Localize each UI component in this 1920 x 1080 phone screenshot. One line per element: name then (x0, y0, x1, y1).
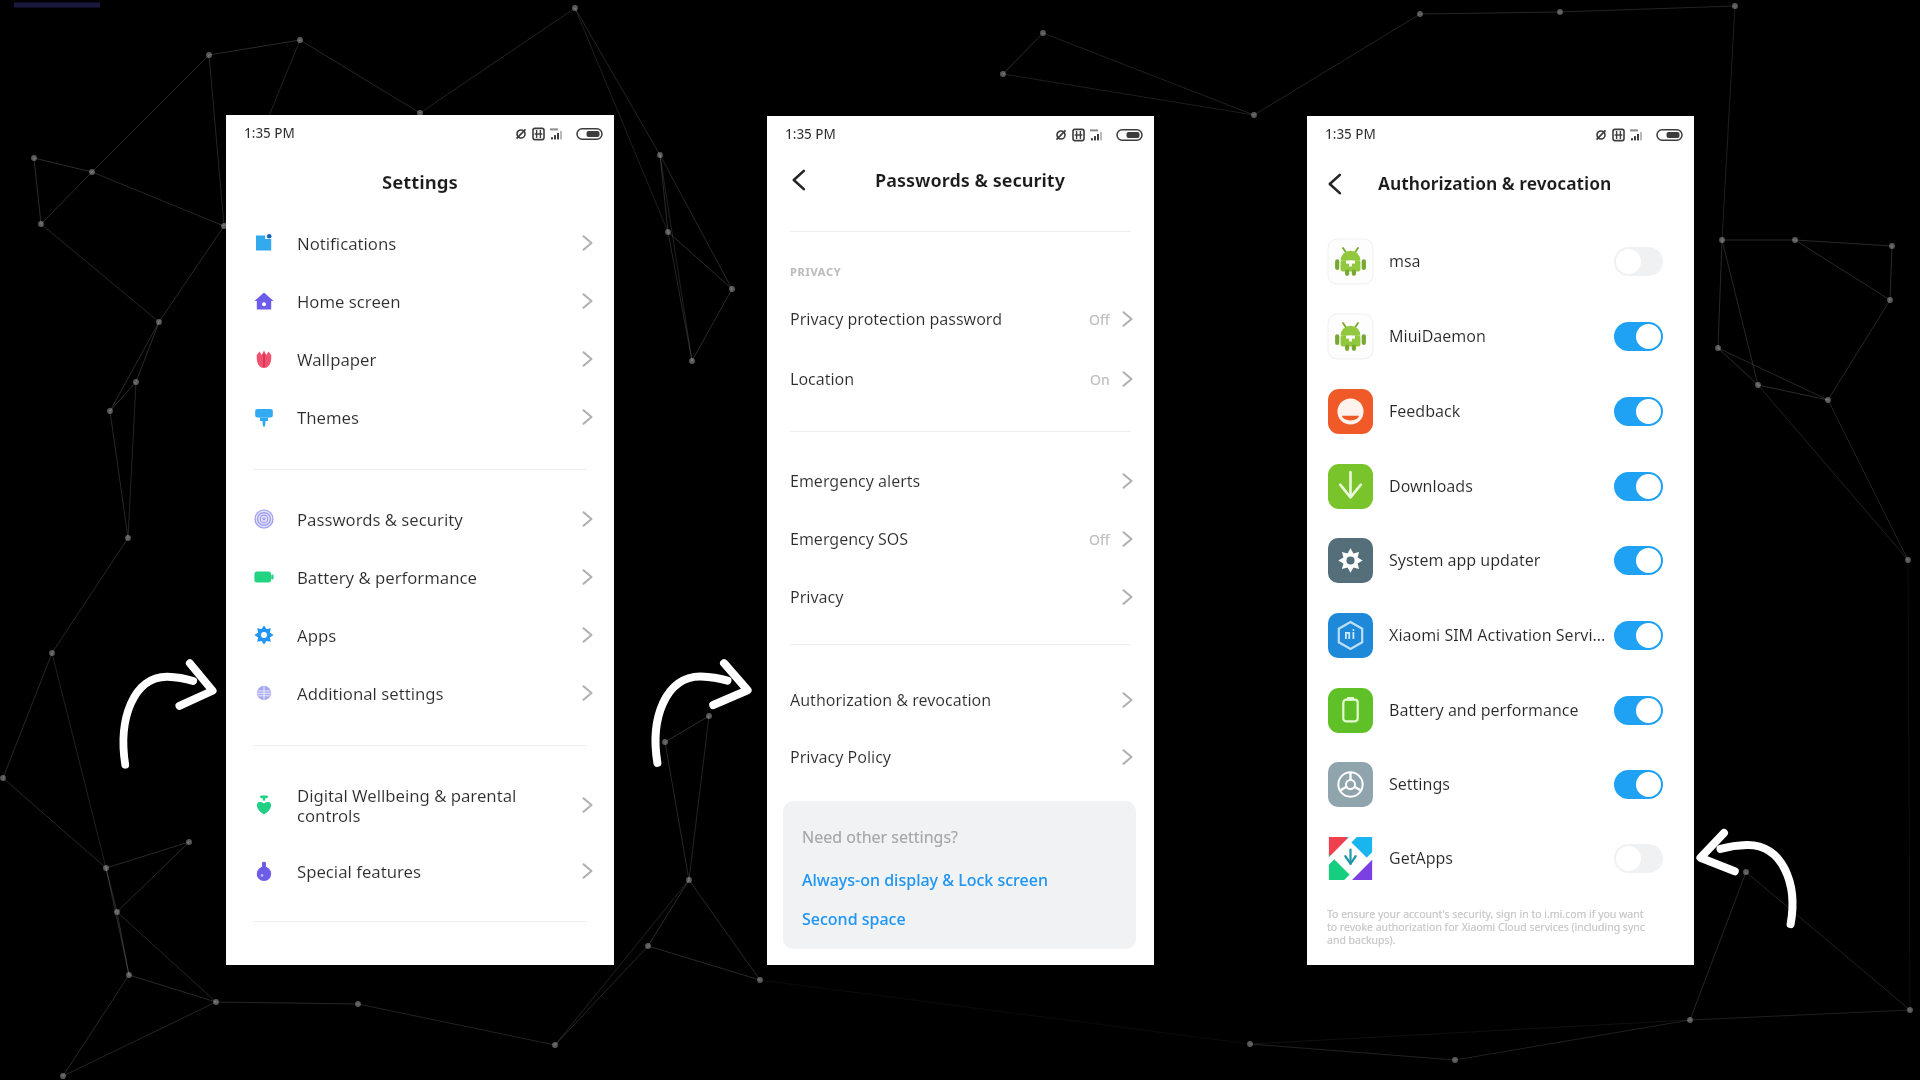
staticText: Privacy (790, 586, 844, 608)
staticText: System app updater (1389, 549, 1541, 571)
button[interactable]: Xiaomi SIM Activation Servi... (1307, 598, 1694, 672)
button[interactable]: Wallpaper (226, 330, 614, 388)
staticText: Settings (382, 169, 458, 194)
button[interactable]: Toggle off (1614, 247, 1663, 276)
staticText: Privacy Policy (790, 746, 891, 768)
button[interactable]: Location (767, 350, 1154, 408)
button[interactable]: Emergency SOS (767, 510, 1154, 568)
staticText: Digital Wellbeing & parental controls (297, 784, 517, 827)
staticText: 1:35 PM (1325, 125, 1376, 143)
staticText: Second space (802, 908, 906, 930)
staticText: On (1090, 370, 1110, 389)
button[interactable]: Apps (226, 606, 614, 664)
button[interactable]: Privacy (767, 568, 1154, 626)
staticText: Off (1089, 310, 1110, 329)
button[interactable]: Back (1319, 167, 1353, 201)
button[interactable]: Battery and performance (1307, 673, 1694, 747)
staticText: Passwords & security (297, 508, 463, 531)
button[interactable]: Digital Wellbeing & parental controls (226, 776, 614, 834)
button[interactable]: Back (783, 163, 817, 197)
staticText: Authorization & revocation (1378, 172, 1612, 196)
staticText: Notifications (297, 232, 397, 255)
staticText: 1:35 PM (785, 125, 836, 143)
button[interactable]: Toggle on (1614, 546, 1663, 575)
staticText: Battery and performance (1389, 699, 1579, 721)
staticText: Passwords & security (875, 168, 1065, 193)
button[interactable]: GetApps (1307, 821, 1694, 895)
button[interactable]: Downloads (1307, 449, 1694, 523)
button[interactable]: Home screen (226, 272, 614, 330)
button[interactable]: Second space (802, 908, 906, 930)
button[interactable]: Themes (226, 388, 614, 446)
staticText: Need other settings? (802, 826, 959, 848)
button[interactable]: Notifications (226, 214, 614, 272)
staticText: Xiaomi SIM Activation Servi... (1389, 624, 1606, 646)
button[interactable]: Authorization & revocation (767, 671, 1154, 729)
button[interactable]: Settings (1307, 747, 1694, 821)
button[interactable]: Toggle on (1614, 322, 1663, 351)
staticText: Themes (297, 406, 360, 429)
button[interactable]: Toggle on (1614, 472, 1663, 501)
button[interactable]: Privacy protection password (767, 290, 1154, 348)
staticText: Off (1089, 530, 1110, 549)
staticText: PRIVACY (790, 264, 842, 279)
staticText: Special features (297, 860, 421, 883)
staticText: Emergency alerts (790, 470, 921, 492)
button[interactable]: Toggle on (1614, 770, 1663, 799)
staticText: Additional settings (297, 682, 444, 705)
staticText: Wallpaper (297, 348, 377, 371)
staticText: Apps (297, 624, 337, 647)
staticText: Battery & performance (297, 566, 477, 589)
staticText: Emergency SOS (790, 528, 909, 550)
button[interactable]: Special features (226, 842, 614, 900)
staticText: Always-on display & Lock screen (802, 869, 1048, 891)
staticText: MiuiDaemon (1389, 325, 1486, 347)
button[interactable]: Passwords & security (226, 490, 614, 548)
staticText: 1:35 PM (244, 124, 295, 142)
button[interactable]: Toggle on (1614, 621, 1663, 650)
staticText: To ensure your account's security, sign … (1327, 907, 1649, 947)
button[interactable]: Feedback (1307, 374, 1694, 448)
staticText: Settings (1389, 773, 1450, 795)
button[interactable]: Emergency alerts (767, 452, 1154, 510)
button[interactable]: Battery & performance (226, 548, 614, 606)
button[interactable]: Privacy Policy (767, 728, 1154, 786)
staticText: GetApps (1389, 847, 1454, 869)
button[interactable]: Toggle on (1614, 397, 1663, 426)
staticText: msa (1389, 250, 1421, 272)
button[interactable]: Always-on display & Lock screen (802, 869, 1048, 891)
staticText: Privacy protection password (790, 308, 1002, 330)
staticText: Downloads (1389, 475, 1473, 497)
staticText: Authorization & revocation (790, 689, 992, 711)
staticText: Feedback (1389, 400, 1461, 422)
button[interactable]: Additional settings (226, 664, 614, 722)
button[interactable]: msa (1307, 224, 1694, 298)
staticText: Home screen (297, 290, 401, 313)
button[interactable]: MiuiDaemon (1307, 299, 1694, 373)
button[interactable]: Toggle on (1614, 696, 1663, 725)
staticText: Location (790, 368, 855, 390)
button[interactable]: System app updater (1307, 523, 1694, 597)
button[interactable]: Toggle off (1614, 844, 1663, 873)
